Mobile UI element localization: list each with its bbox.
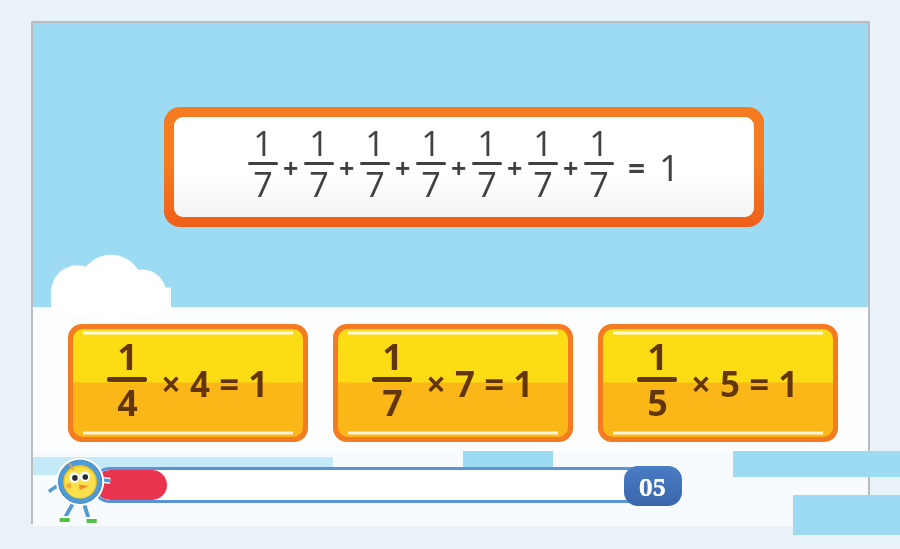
staticText: 7	[382, 378, 403, 427]
staticText: × 5 = 1	[691, 360, 799, 408]
staticText: 1	[477, 120, 497, 166]
staticText: 1	[421, 120, 441, 166]
staticText: +	[395, 149, 411, 186]
staticText: +	[283, 149, 299, 186]
staticText: 1	[647, 332, 668, 381]
staticText: +	[339, 149, 355, 186]
other: Progress mascot	[47, 453, 119, 525]
staticText: +	[451, 149, 467, 186]
staticText: 1	[253, 120, 273, 166]
staticText: 1	[589, 120, 609, 166]
staticText: 1	[533, 120, 553, 166]
staticText: =	[628, 147, 646, 188]
staticText: 1	[382, 332, 403, 381]
staticText: +	[563, 149, 579, 186]
button[interactable]: 1	[73, 329, 303, 437]
staticText: 1	[117, 332, 138, 381]
staticText: 7	[421, 161, 441, 207]
staticText: 5	[647, 378, 668, 427]
staticText: 4	[117, 378, 138, 427]
staticText: +	[507, 149, 523, 186]
staticText: × 7 = 1	[426, 360, 534, 408]
button[interactable]: 1	[174, 117, 754, 217]
staticText: 7	[309, 161, 329, 207]
staticText: × 4 = 1	[161, 360, 269, 408]
button[interactable]: 05	[624, 466, 682, 506]
staticText: 1	[365, 120, 385, 166]
staticText: 1	[309, 120, 329, 166]
staticText: 05	[639, 470, 667, 503]
staticText: 7	[253, 161, 273, 207]
button[interactable]: 1	[603, 329, 833, 437]
staticText: 7	[477, 161, 497, 207]
staticText: 1	[659, 143, 680, 192]
staticText: 7	[589, 161, 609, 207]
button[interactable]: 1	[338, 329, 568, 437]
staticText: 7	[533, 161, 553, 207]
staticText: 7	[365, 161, 385, 207]
